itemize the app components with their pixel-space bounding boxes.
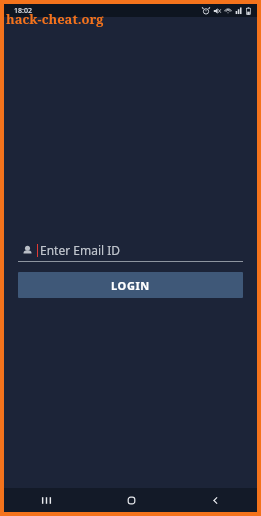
staticText: 18:02 [14, 6, 32, 16]
staticText: hack-cheat.org [6, 10, 104, 28]
button[interactable]: Recent apps [4, 488, 89, 512]
staticText: LOGIN [111, 278, 150, 293]
button[interactable]: Home [89, 488, 173, 512]
button[interactable]: Enter Email ID [18, 239, 243, 262]
button[interactable]: Back [173, 488, 257, 512]
button[interactable]: LOGIN [18, 272, 243, 298]
staticText: Enter Email ID [40, 242, 121, 258]
